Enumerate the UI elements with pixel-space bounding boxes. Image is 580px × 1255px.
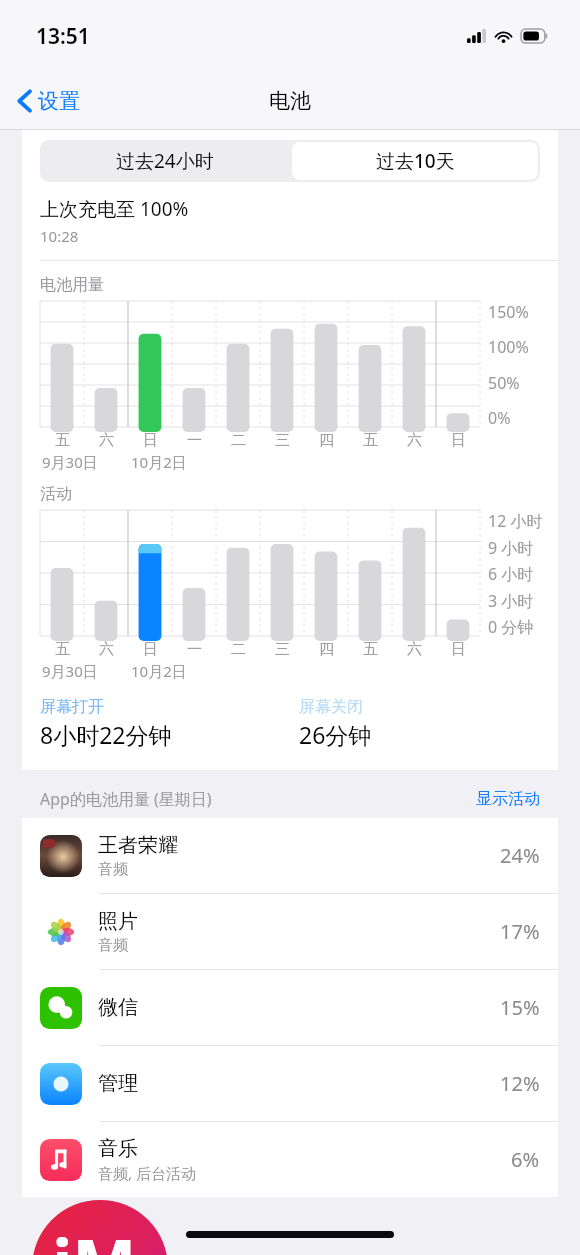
staticText: 0% (488, 407, 511, 429)
staticText: 电池用量 (40, 275, 104, 295)
button[interactable]: 过去24小时 (40, 140, 290, 182)
staticText: 10月2日 (131, 661, 187, 681)
staticText: 3 小时 (488, 590, 534, 612)
button[interactable]: 过去10天 (292, 142, 538, 180)
staticText: 0 分钟 (488, 616, 534, 638)
staticText: 屏幕关闭 (299, 697, 363, 717)
staticText: 三 (275, 640, 290, 659)
staticText: 六 (407, 431, 422, 450)
staticText: 15% (500, 994, 540, 1021)
staticText: 6% (511, 1146, 540, 1173)
staticText: 屏幕打开 (40, 697, 104, 717)
staticText: 五 (363, 431, 378, 450)
staticText: 管理 (98, 1071, 138, 1096)
staticText: 24% (500, 842, 540, 869)
staticText: 音频 (98, 936, 128, 955)
staticText: 12 小时 (488, 510, 543, 532)
staticText: 26分钟 (299, 719, 372, 750)
staticText: 过去10天 (376, 148, 455, 174)
staticText: iM (52, 1216, 137, 1255)
staticText: 9月30日 (42, 661, 98, 681)
staticText: 日 (451, 640, 466, 659)
button[interactable]: 音乐 (22, 1122, 558, 1197)
staticText: 6 小时 (488, 563, 534, 585)
staticText: 音频 (98, 860, 128, 879)
staticText: 六 (407, 640, 422, 659)
staticText: 显示活动 (476, 789, 540, 809)
staticText: 10:28 (40, 226, 79, 246)
staticText: 一 (187, 640, 202, 659)
staticText: 照片 (98, 909, 138, 934)
staticText: 六 (99, 640, 114, 659)
staticText: 9 小时 (488, 537, 534, 559)
staticText: 过去24小时 (116, 148, 214, 174)
staticText: 9月30日 (42, 452, 98, 472)
staticText: 10月2日 (131, 452, 187, 472)
staticText: 100% (488, 336, 529, 358)
staticText: 二 (231, 640, 246, 659)
staticText: 17% (500, 918, 540, 945)
staticText: 二 (231, 431, 246, 450)
staticText: 日 (143, 640, 158, 659)
staticText: 日 (143, 431, 158, 450)
staticText: 音频, 后台活动 (98, 1163, 196, 1183)
button[interactable]: 王者荣耀 (22, 818, 558, 893)
staticText: 12% (500, 1070, 540, 1097)
button[interactable]: 微信 (22, 970, 558, 1045)
staticText: 四 (319, 640, 334, 659)
staticText: 五 (55, 431, 70, 450)
button[interactable]: 设置 (10, 82, 88, 120)
staticText: 日 (451, 431, 466, 450)
staticText: 一 (187, 431, 202, 450)
staticText: App的电池用量 (星期日) (40, 788, 212, 810)
staticText: 8小时22分钟 (40, 719, 172, 750)
staticText: 六 (99, 431, 114, 450)
staticText: 设置 (38, 88, 80, 114)
staticText: 王者荣耀 (98, 833, 178, 858)
staticText: 三 (275, 431, 290, 450)
button[interactable]: 照片 (22, 894, 558, 969)
staticText: 电池 (269, 88, 311, 114)
staticText: 四 (319, 431, 334, 450)
staticText: 微信 (98, 995, 138, 1020)
staticText: 150% (488, 301, 529, 323)
staticText: 五 (55, 640, 70, 659)
button[interactable]: 显示活动 (476, 789, 540, 809)
staticText: 活动 (40, 484, 72, 504)
staticText: 五 (363, 640, 378, 659)
button[interactable]: 管理 (22, 1046, 558, 1121)
staticText: 上次充电至 100% (40, 196, 189, 222)
staticText: 13:51 (36, 22, 90, 51)
staticText: 50% (488, 372, 520, 394)
staticText: 音乐 (98, 1136, 138, 1161)
